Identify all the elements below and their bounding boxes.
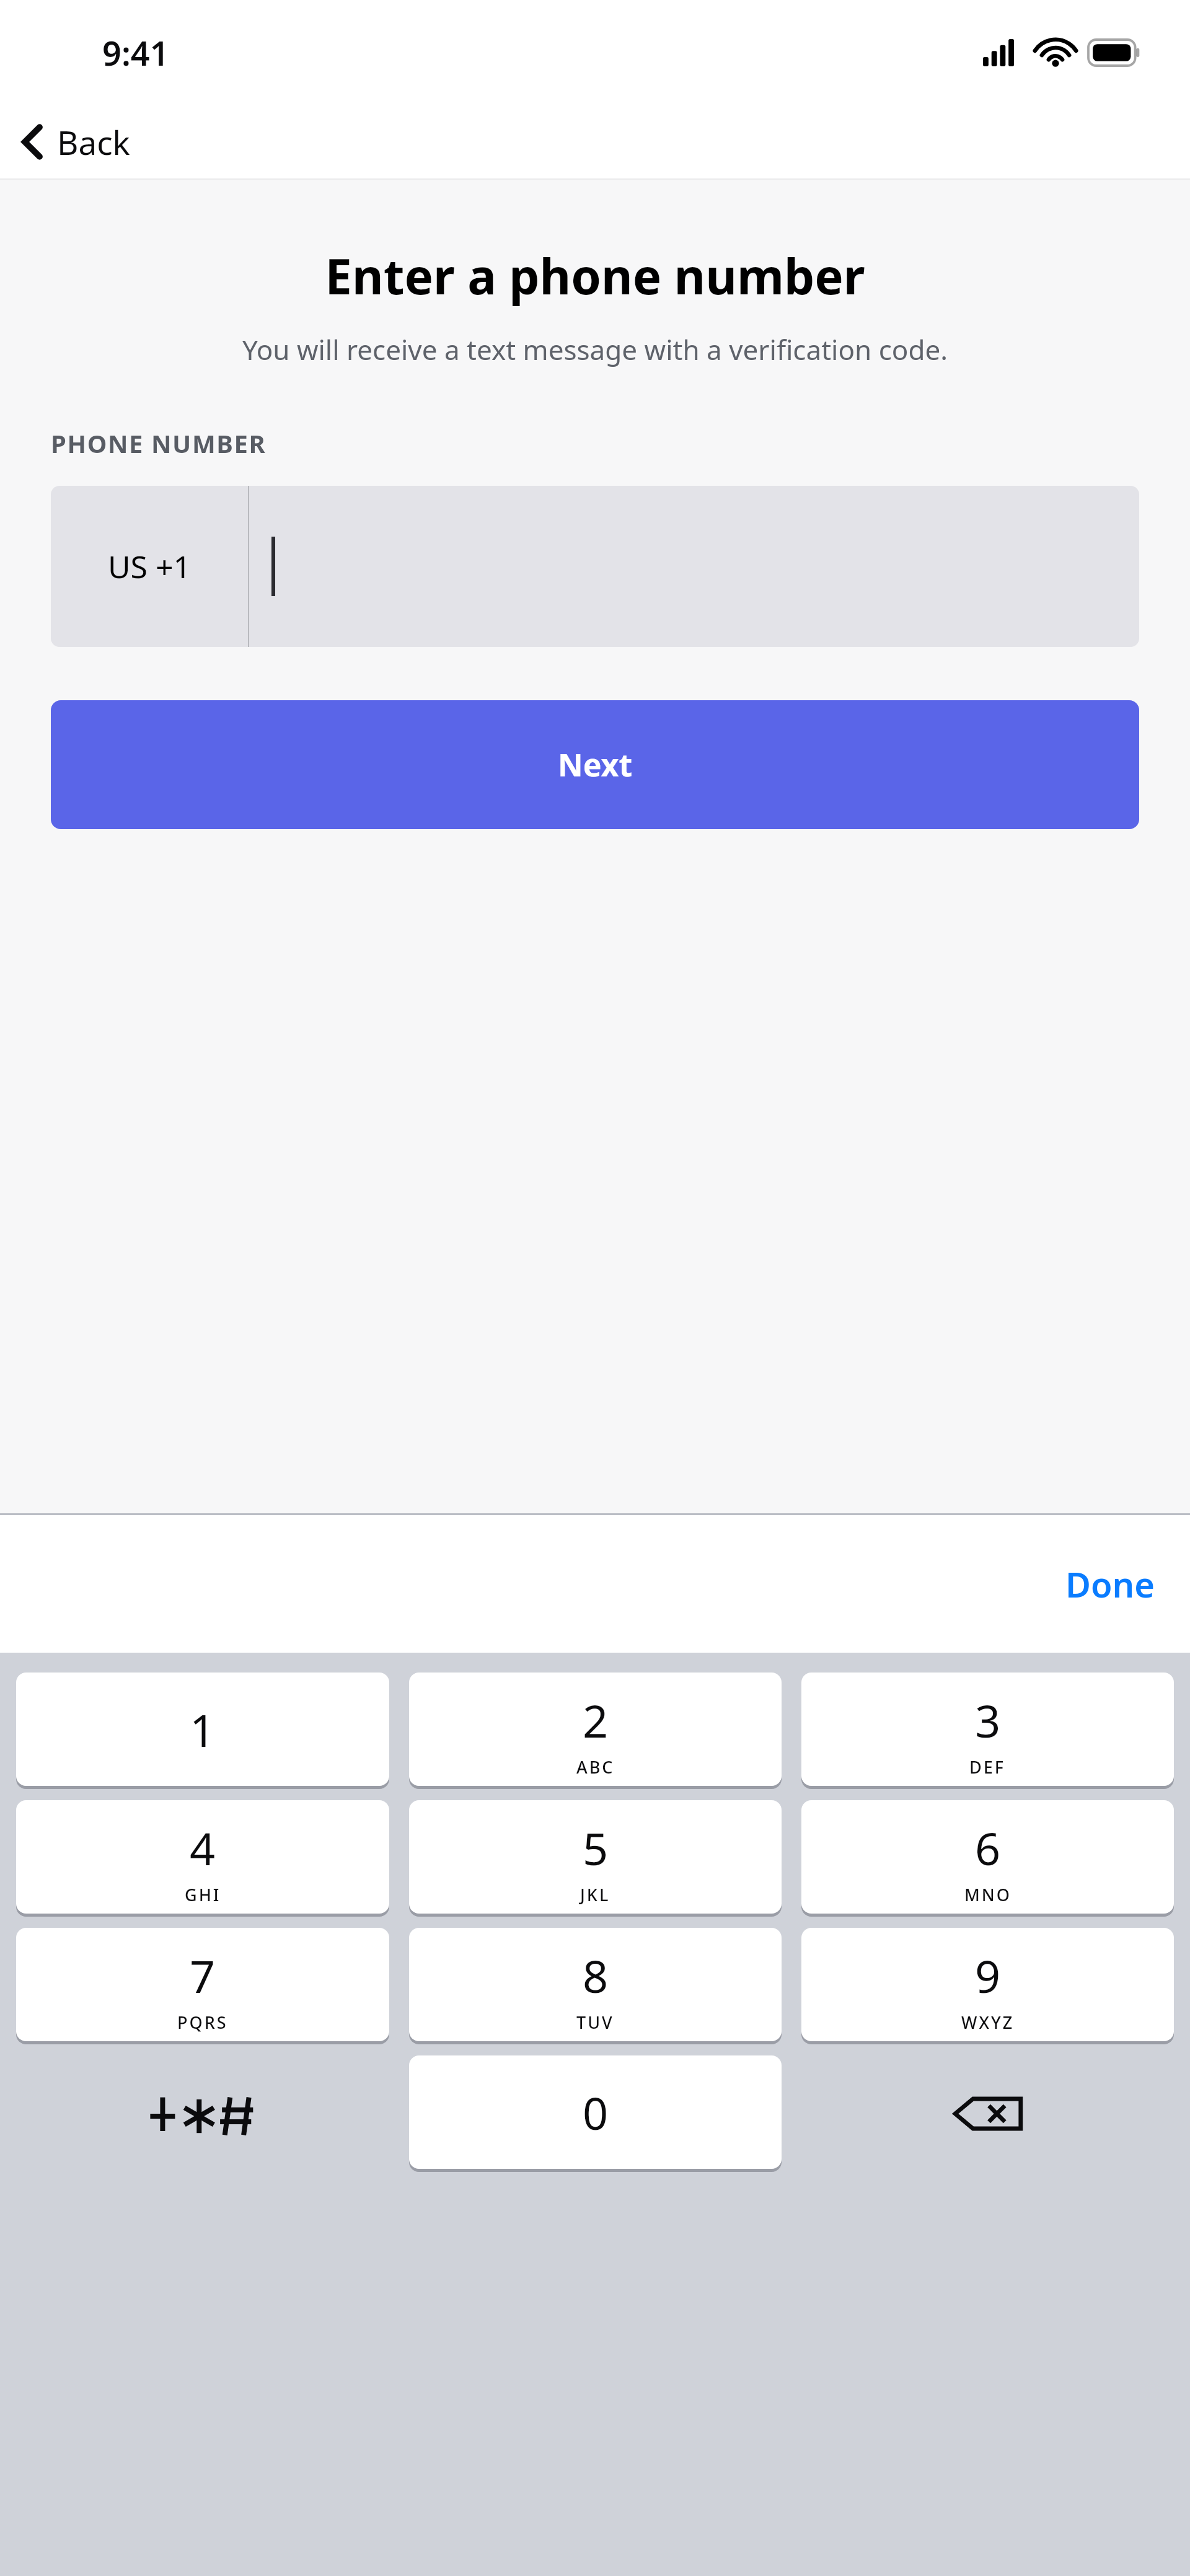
staticText: 8 — [583, 1945, 609, 2006]
button[interactable]: Back — [0, 105, 152, 178]
staticText: Enter a phone number — [37, 243, 1153, 309]
staticText: 2 — [583, 1690, 609, 1751]
staticText: ABC — [576, 1756, 615, 1778]
staticText: You will receive a text message with a v… — [31, 331, 1159, 368]
staticText: MNO — [964, 1883, 1011, 1906]
staticText: PHONE NUMBER — [51, 426, 267, 460]
button[interactable]: 5 — [409, 1800, 782, 1914]
button[interactable]: 6 — [801, 1800, 1174, 1914]
staticText: 9:41 — [102, 30, 169, 76]
button[interactable]: 9 — [801, 1928, 1174, 2041]
staticText: 6 — [975, 1818, 1001, 1878]
button[interactable]: 8 — [409, 1928, 782, 2041]
staticText: TUV — [576, 2011, 614, 2034]
staticText: WXYZ — [961, 2011, 1015, 2034]
staticText: 7 — [190, 1945, 216, 2006]
staticText: 3 — [975, 1690, 1001, 1751]
staticText: DEF — [969, 1756, 1006, 1778]
button[interactable]: 4 — [16, 1800, 389, 1914]
staticText: 9 — [975, 1945, 1001, 2006]
staticText: Next — [558, 744, 633, 786]
button[interactable]: 7 — [16, 1928, 389, 2041]
button[interactable]: Done — [1031, 1515, 1190, 1653]
staticText: JKL — [580, 1883, 610, 1906]
button[interactable]: 0 — [409, 2055, 782, 2169]
staticText: PQRS — [177, 2011, 228, 2034]
staticText: 4 — [190, 1818, 216, 1878]
staticText: GHI — [185, 1883, 221, 1906]
button[interactable]: 3 — [801, 1673, 1174, 1786]
button[interactable]: US +1 — [51, 486, 1139, 647]
staticText: Done — [1065, 1560, 1155, 1607]
staticText: Back — [57, 120, 130, 164]
staticText: US +1 — [108, 545, 192, 587]
button[interactable]: 1 — [16, 1673, 389, 1786]
staticText: 0 — [583, 2082, 609, 2143]
staticText: 1 — [190, 1699, 216, 1760]
button[interactable]: 2 — [409, 1673, 782, 1786]
button[interactable]: Plus star hash — [16, 2055, 389, 2172]
staticText: 5 — [583, 1818, 609, 1878]
button[interactable]: Next — [51, 700, 1139, 829]
button[interactable]: Backspace — [801, 2055, 1174, 2172]
